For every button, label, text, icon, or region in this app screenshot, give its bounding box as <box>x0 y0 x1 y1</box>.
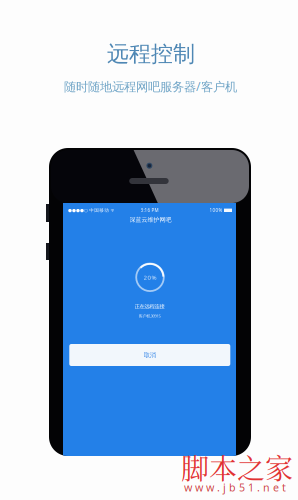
staticText: 远程控制 <box>107 40 195 68</box>
staticText: 100% <box>209 207 222 213</box>
staticText: 脚本之家 <box>181 447 293 487</box>
staticText: w w w . j b 5 1 . n e t <box>184 480 286 494</box>
staticText: 中国移动 <box>89 207 109 213</box>
staticText: 客户机00915 <box>138 313 160 319</box>
staticText: 3:16 PM <box>140 207 158 213</box>
staticText: ●●●●○ <box>68 208 88 213</box>
staticText: 深蓝云维护网吧 <box>129 216 171 224</box>
staticText: 随时随地远程网吧服务器/客户机 <box>64 78 237 95</box>
staticText: ᯤ <box>110 207 114 213</box>
button[interactable]: 取消 <box>69 344 230 366</box>
staticText: 20% <box>143 273 156 281</box>
staticText: 正在远程连接 <box>134 303 164 310</box>
staticText: 取消 <box>144 351 156 359</box>
